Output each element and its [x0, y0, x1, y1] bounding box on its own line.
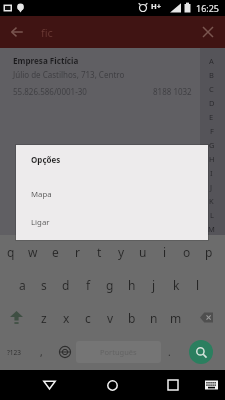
staticText: b: [128, 310, 136, 326]
button[interactable]: k: [165, 268, 187, 301]
button[interactable]: c: [77, 301, 99, 334]
staticText: e: [52, 244, 59, 260]
button[interactable]: ?123: [0, 334, 28, 370]
staticText: w: [28, 244, 38, 260]
staticText: i: [163, 244, 167, 260]
staticText: s: [41, 277, 47, 293]
button[interactable]: f: [77, 268, 99, 301]
staticText: O: [209, 252, 215, 262]
staticText: Empresa Fictícia: [13, 55, 79, 66]
staticText: 8188 1032: [153, 86, 192, 97]
staticText: E: [209, 112, 214, 122]
staticText: u: [139, 244, 147, 260]
staticText: 16:25: [196, 2, 220, 14]
button[interactable]: e: [44, 235, 66, 268]
staticText: H: [209, 154, 215, 164]
staticText: x: [63, 310, 70, 326]
staticText: 55.826.586/0001-30: [13, 86, 87, 97]
button[interactable]: v: [99, 301, 121, 334]
button[interactable]: g: [99, 268, 121, 301]
staticText: .: [168, 345, 171, 359]
button[interactable]: b: [121, 301, 143, 334]
button[interactable]: h: [121, 268, 143, 301]
staticText: g: [106, 277, 114, 293]
button[interactable]: l: [187, 268, 209, 301]
button[interactable]: j: [143, 268, 165, 301]
button[interactable]: r: [66, 235, 88, 268]
button[interactable]: a: [11, 268, 33, 301]
staticText: T: [209, 322, 214, 332]
staticText: Júlio de Castilhos, 713, Centro: [13, 69, 125, 80]
button[interactable]: Ligar: [16, 208, 208, 236]
button[interactable]: Clear search: [191, 16, 225, 48]
staticText: L: [210, 210, 214, 220]
staticText: m: [170, 310, 182, 326]
staticText: J: [210, 182, 213, 192]
button[interactable]: Backspace: [187, 301, 225, 334]
button[interactable]: Change language: [54, 334, 76, 370]
button[interactable]: z: [33, 301, 55, 334]
button[interactable]: d: [55, 268, 77, 301]
button[interactable]: m: [165, 301, 187, 334]
staticText: V: [209, 350, 214, 360]
button[interactable]: Search: [177, 334, 225, 370]
staticText: q: [7, 244, 15, 260]
staticText: o: [183, 244, 191, 260]
button[interactable]: s: [33, 268, 55, 301]
staticText: f: [86, 277, 91, 293]
staticText: r: [75, 244, 80, 260]
staticText: k: [173, 277, 180, 293]
staticText: H+: [151, 1, 162, 11]
staticText: l: [196, 277, 200, 293]
button[interactable]: Shift: [0, 301, 33, 334]
staticText: n: [150, 310, 158, 326]
staticText: G: [209, 140, 215, 150]
staticText: v: [107, 310, 114, 326]
button[interactable]: Mapa: [16, 180, 208, 208]
staticText: j: [152, 277, 156, 293]
button[interactable]: Switch keyboard: [197, 370, 225, 400]
staticText: S: [209, 308, 214, 318]
button[interactable]: p: [198, 235, 220, 268]
button[interactable]: q: [0, 235, 22, 268]
staticText: t: [97, 244, 102, 260]
staticText: B: [209, 70, 214, 80]
button[interactable]: Home: [94, 370, 130, 400]
button[interactable]: x: [55, 301, 77, 334]
staticText: A: [209, 56, 214, 66]
staticText: U: [209, 336, 215, 346]
button[interactable]: Back: [0, 16, 33, 48]
staticText: Opções: [31, 154, 61, 165]
staticText: Português: [100, 347, 137, 357]
staticText: p: [205, 244, 213, 260]
staticText: a: [19, 277, 26, 293]
staticText: h: [128, 277, 136, 293]
staticText: y: [118, 244, 125, 260]
staticText: M: [208, 224, 215, 234]
button[interactable]: o: [176, 235, 198, 268]
button[interactable]: t: [88, 235, 110, 268]
staticText: c: [85, 310, 91, 326]
staticText: d: [62, 277, 70, 293]
staticText: fic: [41, 25, 53, 40]
staticText: C: [209, 84, 214, 94]
button[interactable]: u: [132, 235, 154, 268]
staticText: D: [209, 98, 215, 108]
staticText: I: [210, 168, 213, 178]
button[interactable]: Back: [31, 370, 67, 400]
staticText: Mapa: [31, 189, 52, 200]
button[interactable]: Recent apps: [155, 370, 191, 400]
staticText: F: [210, 126, 214, 136]
button[interactable]: i: [154, 235, 176, 268]
button[interactable]: w: [22, 235, 44, 268]
button[interactable]: n: [143, 301, 165, 334]
button[interactable]: y: [110, 235, 132, 268]
